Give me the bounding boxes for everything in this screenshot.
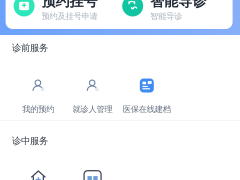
staticText: 智能导诊 (150, 0, 206, 10)
button[interactable]: 医保在线建档 (120, 78, 174, 111)
staticText: 我的预约 (22, 104, 54, 114)
staticText: 诊中服务 (12, 135, 48, 147)
staticText: 医保在线建档 (123, 104, 171, 114)
staticText: 诊前服务 (12, 42, 48, 54)
button[interactable]: 我的预约 (11, 78, 65, 111)
button[interactable]: 门诊缴费 (11, 170, 65, 180)
staticText: 预约及挂号申请 (42, 11, 98, 21)
button[interactable]: 就诊人管理 (65, 78, 120, 111)
button[interactable]: 智能导诊 (122, 0, 230, 17)
staticText: 智能导诊 (150, 11, 182, 21)
staticText: 就诊人管理 (73, 104, 113, 114)
button[interactable]: 预约挂号 (14, 0, 122, 17)
staticText: 预约挂号 (42, 0, 98, 10)
button[interactable]: 电子票据 (65, 170, 120, 180)
